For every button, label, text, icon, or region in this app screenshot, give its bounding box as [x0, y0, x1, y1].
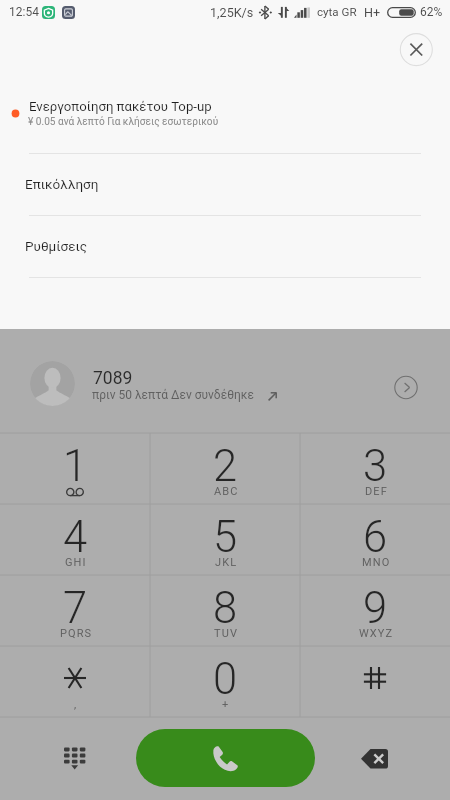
staticText: JKL — [215, 556, 238, 569]
staticText: ¥ 0.05 ανά λεπτό Για κλήσεις εσωτερικού — [28, 116, 219, 128]
staticText: GHI — [65, 556, 87, 569]
staticText: MNO — [362, 556, 391, 569]
button[interactable]: Close — [392, 26, 440, 74]
button[interactable]: 4 — [0, 504, 150, 575]
button[interactable]: 1 — [0, 433, 150, 504]
staticText: Επικόλληση — [25, 176, 99, 192]
button[interactable]: 6 — [300, 504, 450, 575]
staticText: Ενεργοποίηση πακέτου Top-up — [29, 99, 212, 114]
staticText: 0 — [213, 654, 238, 705]
staticText: 8 — [213, 583, 238, 634]
button[interactable]: 7089 — [0, 329, 450, 433]
button[interactable]: 5 — [150, 504, 300, 575]
button[interactable] — [300, 646, 450, 717]
staticText: 62% — [420, 5, 443, 19]
button[interactable]: 3 — [300, 433, 450, 504]
staticText: πριν 50 λεπτά Δεν συνδέθηκε — [92, 388, 254, 402]
staticText: 9 — [363, 583, 388, 634]
staticText: Ρυθμίσεις — [25, 238, 88, 254]
staticText: ABC — [214, 485, 239, 498]
button[interactable]: Επικόλληση — [0, 154, 450, 215]
staticText: PQRS — [60, 627, 93, 640]
button[interactable]: 8 — [150, 575, 300, 646]
button[interactable]: Call details — [382, 363, 430, 411]
staticText: 12:54 — [9, 5, 39, 19]
button[interactable]: Ρυθμίσεις — [0, 216, 450, 277]
staticText: + — [222, 698, 230, 711]
staticText: 6 — [363, 512, 388, 563]
staticText: 7089 — [93, 368, 133, 389]
staticText: 7 — [63, 583, 88, 634]
staticText: DEF — [365, 485, 388, 498]
button[interactable]: 9 — [300, 575, 450, 646]
staticText: WXYZ — [359, 627, 394, 640]
staticText: 3 — [363, 441, 388, 492]
staticText: 2 — [213, 441, 238, 492]
staticText: 4 — [63, 512, 88, 563]
button[interactable]: Ενεργοποίηση πακέτου Top-up — [0, 88, 450, 153]
staticText: , — [74, 698, 78, 711]
staticText: TUV — [214, 627, 239, 640]
staticText: 1 — [63, 441, 88, 492]
button[interactable]: Hide dialpad — [52, 739, 96, 783]
button[interactable]: Backspace — [345, 739, 403, 783]
button[interactable]: 7 — [0, 575, 150, 646]
staticText: H+ — [364, 5, 381, 20]
button[interactable]: 2 — [150, 433, 300, 504]
button[interactable]: , — [0, 646, 150, 717]
staticText: 5 — [213, 512, 238, 563]
staticText: 1,25K/s — [210, 5, 254, 20]
staticText: cyta GR — [317, 5, 357, 19]
button[interactable]: 0 — [150, 646, 300, 717]
button[interactable]: Call — [136, 729, 315, 787]
